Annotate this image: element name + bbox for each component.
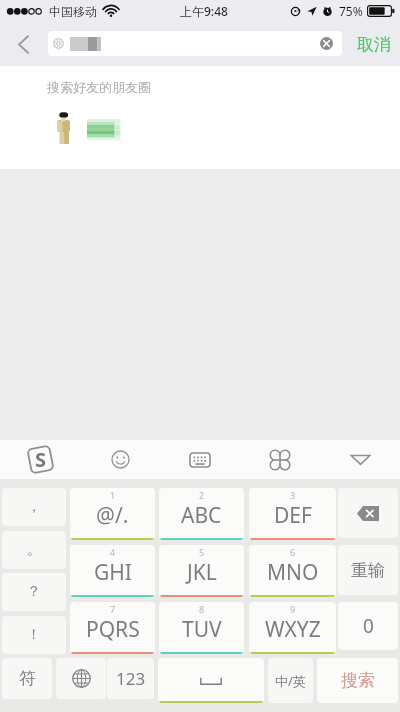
- button[interactable]: 123: [107, 658, 154, 699]
- button[interactable]: 7: [70, 602, 155, 654]
- staticText: ABC: [181, 501, 222, 530]
- staticText: 符: [19, 668, 36, 689]
- staticText: 123: [116, 667, 146, 690]
- button[interactable]: ？: [2, 573, 66, 611]
- staticText: 4: [110, 546, 116, 558]
- button[interactable]: Clear text: [48, 31, 342, 56]
- staticText: 取消: [357, 34, 391, 55]
- staticText: TUV: [182, 615, 222, 644]
- button[interactable]: Keyboard: [160, 440, 240, 479]
- staticText: 8: [199, 603, 205, 615]
- button[interactable]: Clear text: [320, 37, 333, 50]
- button[interactable]: 1: [70, 488, 155, 540]
- staticText: S: [35, 446, 47, 473]
- staticText: 中国移动: [49, 4, 97, 19]
- button[interactable]: [56, 658, 106, 699]
- button[interactable]: Emoji: [80, 440, 160, 479]
- button[interactable]: 。: [2, 531, 66, 569]
- button[interactable]: 取消: [348, 22, 400, 66]
- button[interactable]: 9: [249, 602, 336, 654]
- button[interactable]: [338, 488, 398, 538]
- button[interactable]: 符: [2, 658, 52, 699]
- staticText: ！: [27, 626, 41, 644]
- staticText: 搜索好友的朋友圈: [47, 79, 151, 95]
- staticText: JKL: [187, 558, 217, 587]
- button[interactable]: ！: [2, 616, 66, 654]
- button[interactable]: [158, 658, 264, 703]
- staticText: 75%: [339, 3, 363, 19]
- button[interactable]: 8: [159, 602, 244, 654]
- staticText: 搜索: [341, 670, 375, 691]
- staticText: 7: [110, 603, 116, 615]
- staticText: 3: [290, 489, 296, 501]
- button[interactable]: Stickers: [240, 440, 320, 479]
- button[interactable]: 中/英: [268, 658, 313, 703]
- staticText: 中/英: [275, 672, 306, 690]
- button[interactable]: Back: [0, 22, 46, 66]
- staticText: 9: [290, 603, 296, 615]
- button[interactable]: Hide keyboard: [320, 440, 400, 479]
- staticText: 2: [199, 489, 205, 501]
- staticText: GHI: [94, 558, 132, 587]
- button[interactable]: 搜索: [317, 658, 398, 703]
- button[interactable]: 4: [70, 545, 155, 597]
- button[interactable]: 6: [249, 545, 336, 597]
- staticText: 上午9:48: [180, 3, 228, 19]
- staticText: ？: [27, 583, 41, 601]
- staticText: WXYZ: [265, 615, 321, 644]
- button[interactable]: 2: [159, 488, 244, 540]
- staticText: PQRS: [86, 615, 140, 644]
- button[interactable]: 5: [159, 545, 244, 597]
- staticText: 6: [290, 546, 296, 558]
- staticText: @/.: [96, 501, 129, 530]
- button[interactable]: 重输: [338, 545, 398, 595]
- button[interactable]: ，: [2, 488, 66, 526]
- staticText: ，: [27, 498, 41, 516]
- staticText: 重输: [351, 560, 385, 581]
- staticText: DEF: [274, 501, 312, 530]
- staticText: 5: [199, 546, 205, 558]
- button[interactable]: 3: [249, 488, 336, 540]
- staticText: 0: [363, 613, 374, 639]
- staticText: 。: [27, 541, 41, 559]
- button[interactable]: [0, 107, 400, 169]
- staticText: MNO: [267, 558, 319, 587]
- button[interactable]: 0: [338, 602, 398, 650]
- staticText: 1: [110, 489, 116, 501]
- button[interactable]: Sogou input: [0, 440, 80, 479]
